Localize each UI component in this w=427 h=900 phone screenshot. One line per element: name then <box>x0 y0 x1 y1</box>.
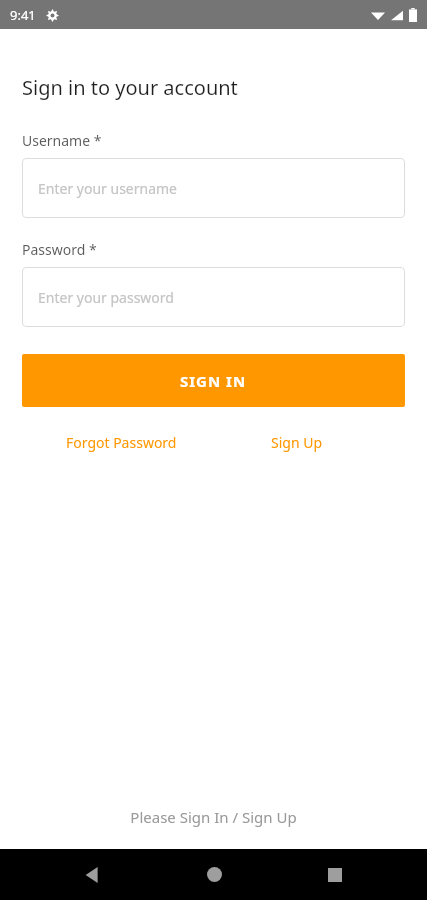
staticText: Sign Up <box>271 433 323 452</box>
staticText: SIGN IN <box>180 371 247 391</box>
staticText: Sign in to your account <box>22 74 238 101</box>
staticText: Username * <box>22 131 102 150</box>
button[interactable]: Recent apps <box>305 849 365 900</box>
staticText: 9:41 <box>10 6 36 24</box>
button[interactable]: Enter your password <box>22 267 405 327</box>
button[interactable]: Home <box>184 849 244 900</box>
button[interactable]: Back <box>62 849 122 900</box>
button[interactable]: Enter your username <box>22 158 405 218</box>
button[interactable]: Sign Up <box>267 429 327 456</box>
staticText: Please Sign In / Sign Up <box>0 807 427 827</box>
button[interactable]: SIGN IN <box>22 354 405 407</box>
staticText: Enter your username <box>38 179 178 198</box>
staticText: Forgot Password <box>66 433 177 452</box>
staticText: Enter your password <box>38 288 174 307</box>
staticText: Password * <box>22 240 97 259</box>
button[interactable]: Forgot Password <box>62 429 181 456</box>
